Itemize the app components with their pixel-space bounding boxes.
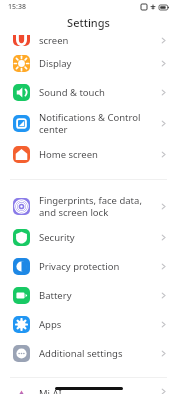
staticText: 15:38 bbox=[8, 2, 26, 12]
staticText: Battery bbox=[39, 289, 155, 302]
staticText: Privacy protection bbox=[39, 260, 155, 273]
button[interactable]: Notifications & Control center bbox=[0, 107, 177, 140]
button[interactable]: Security bbox=[0, 223, 177, 252]
staticText: Fingerprints, face data, and screen lock bbox=[39, 194, 155, 219]
staticText: Security bbox=[39, 231, 155, 244]
button[interactable]: Apps bbox=[0, 310, 177, 339]
button[interactable]: Fingerprints, face data, and screen lock bbox=[0, 190, 177, 223]
staticText: Sound & touch bbox=[39, 86, 155, 99]
button[interactable]: Display bbox=[0, 49, 177, 78]
staticText: Display bbox=[39, 57, 155, 70]
button[interactable]: Mi AI bbox=[0, 387, 177, 394]
button[interactable]: Sound & touch bbox=[0, 78, 177, 107]
button[interactable]: screen bbox=[0, 31, 177, 49]
staticText: Mi AI bbox=[39, 387, 155, 394]
staticText: Notifications & Control center bbox=[39, 111, 155, 136]
button[interactable]: Additional settings bbox=[0, 339, 177, 368]
staticText: screen bbox=[39, 34, 155, 47]
button[interactable]: Privacy protection bbox=[0, 252, 177, 281]
staticText: Home screen bbox=[39, 148, 155, 161]
staticText: Settings bbox=[67, 15, 110, 30]
staticText: Apps bbox=[39, 318, 155, 331]
staticText: Additional settings bbox=[39, 347, 155, 360]
button[interactable]: Battery bbox=[0, 281, 177, 310]
button[interactable]: Home screen bbox=[0, 140, 177, 169]
